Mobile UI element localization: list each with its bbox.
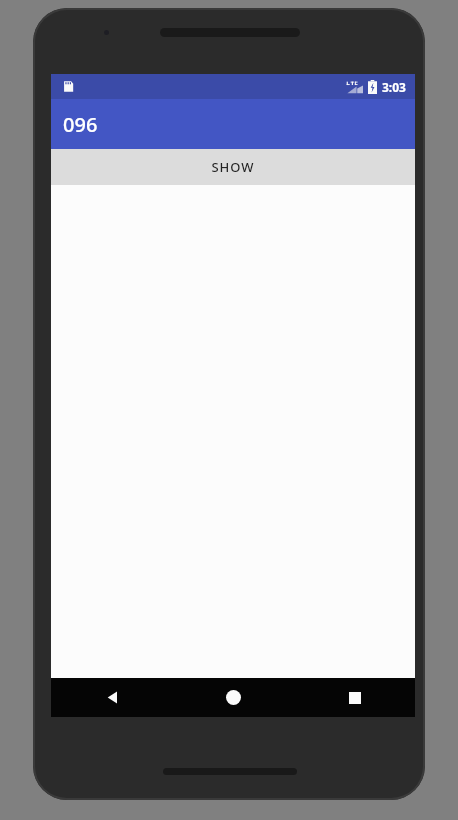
staticText: 3:03 (382, 79, 406, 95)
button[interactable]: Back (51, 678, 173, 717)
button[interactable]: Home (173, 678, 294, 717)
button[interactable]: Recent apps (294, 678, 415, 717)
staticText: SHOW (211, 158, 255, 176)
button[interactable]: SHOW (51, 149, 415, 185)
staticText: 096 (63, 111, 98, 138)
